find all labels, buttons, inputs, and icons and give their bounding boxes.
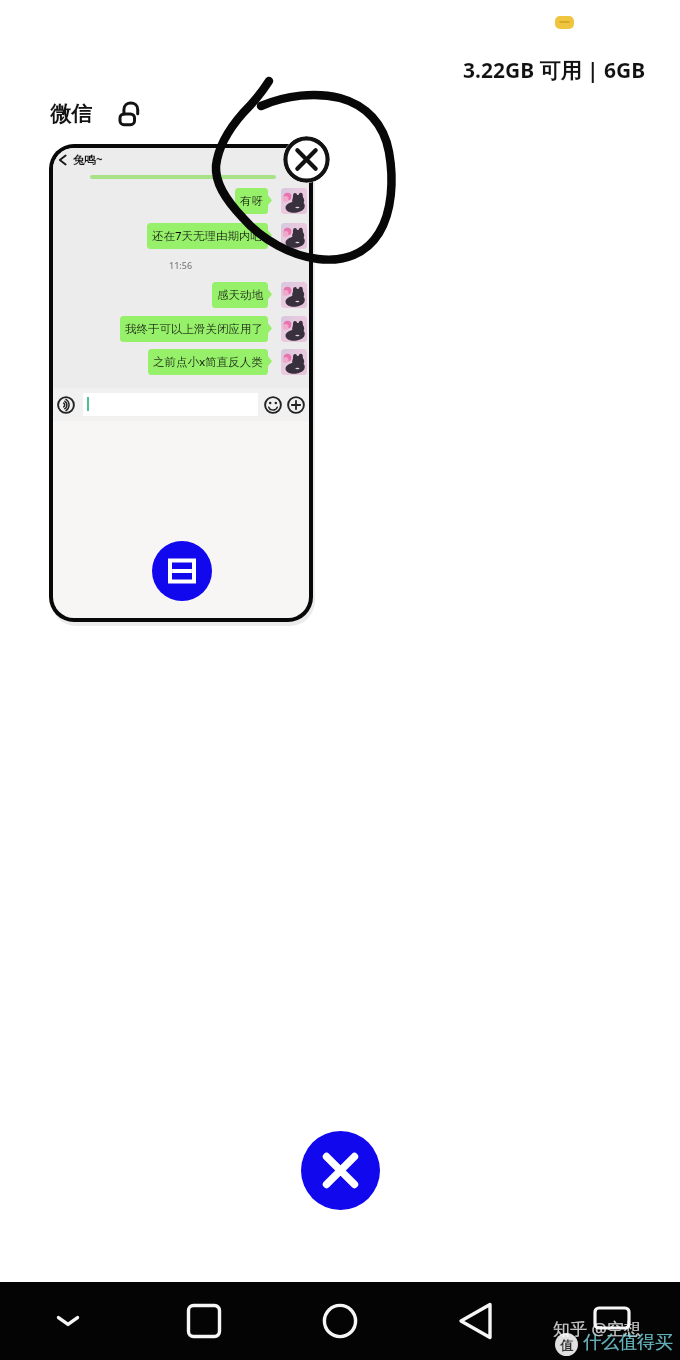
other: Unlock app bbox=[119, 100, 141, 128]
staticText: 还在7天无理由期内吧 bbox=[152, 228, 263, 244]
button[interactable]: 3.22GB 可用 | 6GB bbox=[463, 56, 646, 85]
button[interactable]: WeChat bbox=[152, 541, 212, 601]
staticText: 之前点小x简直反人类 bbox=[153, 354, 263, 370]
staticText: 有呀 bbox=[240, 194, 263, 208]
button[interactable]: Collapse bbox=[0, 1282, 136, 1360]
staticText: 我终于可以上滑关闭应用了 bbox=[125, 322, 263, 336]
staticText: 值 bbox=[560, 1337, 573, 1353]
button[interactable]: Clear all apps bbox=[301, 1131, 380, 1210]
button[interactable]: 兔鸣~ bbox=[53, 148, 309, 618]
button[interactable]: Back bbox=[408, 1282, 544, 1360]
button[interactable]: 微信 bbox=[50, 100, 141, 128]
staticText: 知乎 @空想 bbox=[553, 1317, 641, 1340]
staticText: 3.22GB 可用 | 6GB bbox=[463, 56, 646, 85]
staticText: 兔鸣~ bbox=[73, 152, 103, 168]
staticText: 什么值得买 bbox=[583, 1331, 673, 1354]
button[interactable]: Home bbox=[272, 1282, 408, 1360]
staticText: 微信 bbox=[50, 101, 92, 127]
staticText: 11:56 bbox=[169, 259, 193, 271]
button[interactable]: Screenshot bbox=[544, 1282, 680, 1360]
button[interactable]: Close app bbox=[283, 136, 330, 183]
button[interactable]: Recents bbox=[136, 1282, 272, 1360]
staticText: 感天动地 bbox=[217, 288, 263, 302]
